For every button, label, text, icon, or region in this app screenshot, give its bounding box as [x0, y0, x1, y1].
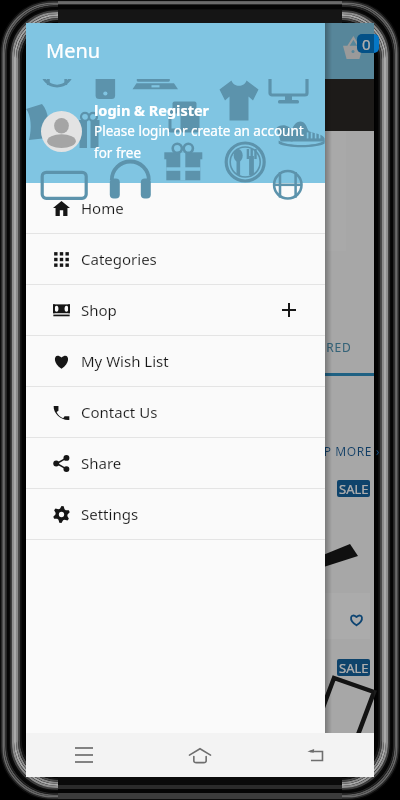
button[interactable]: Categories — [26, 234, 325, 284]
staticText: Shop — [81, 300, 117, 320]
button[interactable]: Settings — [26, 489, 325, 539]
staticText: Categories — [81, 249, 157, 269]
staticText: login & Register — [94, 100, 210, 120]
staticText: SHOP MORE › — [297, 443, 381, 459]
staticText: 0 — [362, 34, 371, 53]
button[interactable]: Recent apps — [26, 733, 142, 777]
staticText: 2 — [318, 726, 326, 744]
button[interactable]: My Wish List — [26, 336, 325, 386]
button[interactable]: Back — [258, 733, 374, 777]
button[interactable]: Contact Us — [26, 387, 325, 437]
staticText: SALE — [339, 659, 369, 676]
staticText: SALE — [339, 480, 369, 497]
button[interactable]: Share — [26, 438, 325, 488]
staticText: My Wish List — [81, 351, 169, 371]
button[interactable]: Home — [26, 183, 325, 233]
button[interactable]: Shop — [26, 285, 325, 335]
staticText: Please login or create an account for fr… — [94, 122, 307, 162]
staticText: Menu — [46, 37, 101, 64]
staticText: Share — [81, 453, 122, 473]
staticText: Contact Us — [81, 402, 158, 422]
button[interactable]: Home — [142, 733, 258, 777]
button[interactable]: Shopping cart — [331, 29, 377, 73]
staticText: Settings — [81, 504, 139, 524]
staticText: FEATURED — [287, 339, 352, 355]
staticText: Home — [81, 198, 124, 218]
